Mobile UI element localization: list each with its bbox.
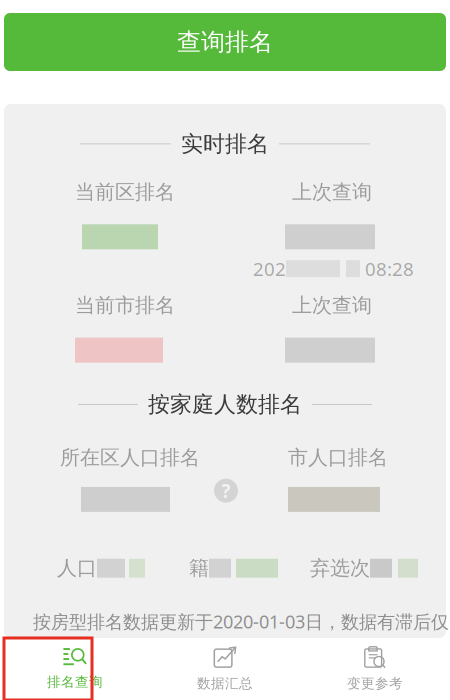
- staticText: 上次查询: [292, 293, 372, 318]
- staticText: 按房型排名数据更新于2020-01-03日，数据有滞后仅: [33, 609, 449, 634]
- button[interactable]: 查询排名: [4, 13, 446, 71]
- staticText: 变更参考: [347, 675, 403, 692]
- staticText: 实时排名: [181, 130, 269, 158]
- staticText: 按家庭人数排名: [148, 391, 302, 418]
- staticText: 弃选次: [310, 556, 370, 580]
- staticText: 当前市排名: [75, 293, 175, 318]
- button[interactable]: 排名查询: [0, 638, 150, 700]
- staticText: 数据汇总: [197, 675, 253, 692]
- staticText: 08:28: [360, 256, 414, 281]
- staticText: 上次查询: [292, 180, 372, 204]
- staticText: 籍: [189, 556, 209, 580]
- button[interactable]: 说明: [213, 466, 237, 491]
- staticText: 当前区排名: [75, 180, 175, 204]
- staticText: 排名查询: [47, 673, 103, 690]
- staticText: 市人口排名: [288, 445, 388, 470]
- button[interactable]: 变更参考: [300, 638, 450, 700]
- staticText: 查询排名: [177, 27, 273, 57]
- staticText: ?: [221, 478, 230, 503]
- button[interactable]: 数据汇总: [150, 638, 300, 700]
- staticText: 供参考，数据来源于市住建局官网，了解更多信息请添: [33, 637, 441, 659]
- staticText: 所在区人口排名: [60, 445, 200, 470]
- staticText: 202: [253, 256, 286, 281]
- staticText: 人口: [57, 556, 97, 580]
